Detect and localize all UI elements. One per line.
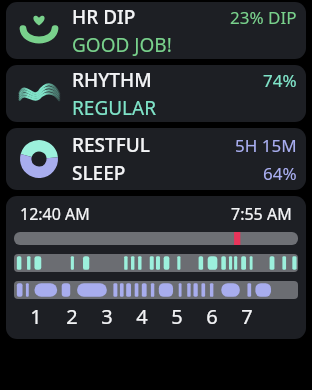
staticText: 12:40 AM [20, 203, 90, 225]
staticText: 64% [263, 162, 297, 185]
staticText: REGULAR [72, 95, 157, 121]
staticText: 2 [66, 303, 78, 330]
staticText: 23% DIP [230, 6, 297, 29]
staticText: 74% [263, 69, 297, 92]
button[interactable]: HR DIP [6, 2, 306, 59]
staticText: 1 [30, 303, 42, 330]
staticText: 4 [136, 303, 148, 330]
button[interactable]: RHYTHM [6, 65, 306, 122]
staticText: RHYTHM [72, 67, 152, 93]
staticText: 3 [101, 303, 113, 330]
staticText: 5 [171, 303, 183, 330]
staticText: 7:55 AM [231, 203, 292, 225]
staticText: SLEEP [72, 160, 126, 186]
staticText: RESTFUL [72, 132, 150, 158]
button[interactable]: RESTFUL [6, 128, 306, 190]
button[interactable]: 12:40 AM [6, 196, 306, 339]
staticText: 7 [241, 303, 253, 330]
staticText: 5H 15M [235, 134, 297, 157]
staticText: GOOD JOB! [72, 32, 172, 58]
staticText: HR DIP [72, 4, 136, 30]
staticText: 6 [206, 303, 218, 330]
